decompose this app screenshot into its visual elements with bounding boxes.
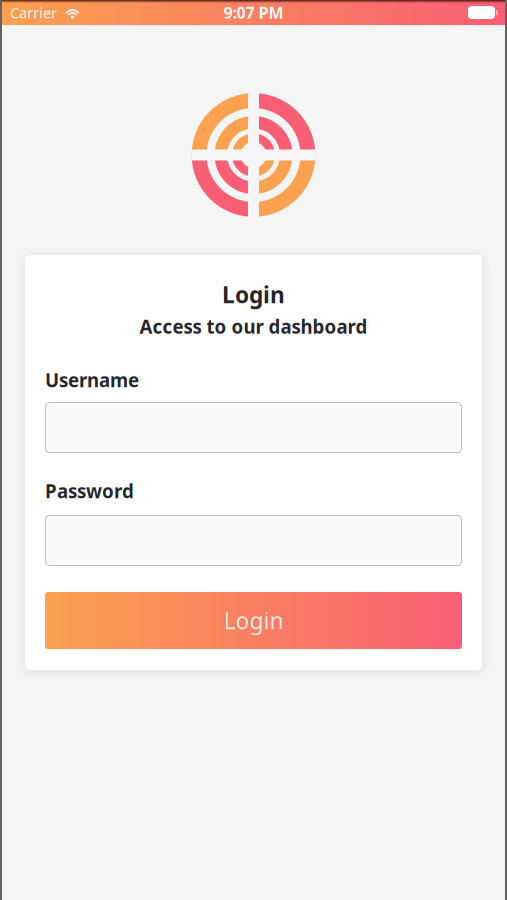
staticText: Login xyxy=(223,605,283,635)
staticText: 9:07 PM xyxy=(223,2,283,23)
staticText: Password xyxy=(45,479,134,503)
staticText: Carrier xyxy=(10,3,57,22)
staticText: Username xyxy=(45,368,139,392)
staticText: Login xyxy=(222,279,285,309)
staticText: Access to our dashboard xyxy=(139,314,367,339)
button[interactable]: Login xyxy=(45,592,462,649)
